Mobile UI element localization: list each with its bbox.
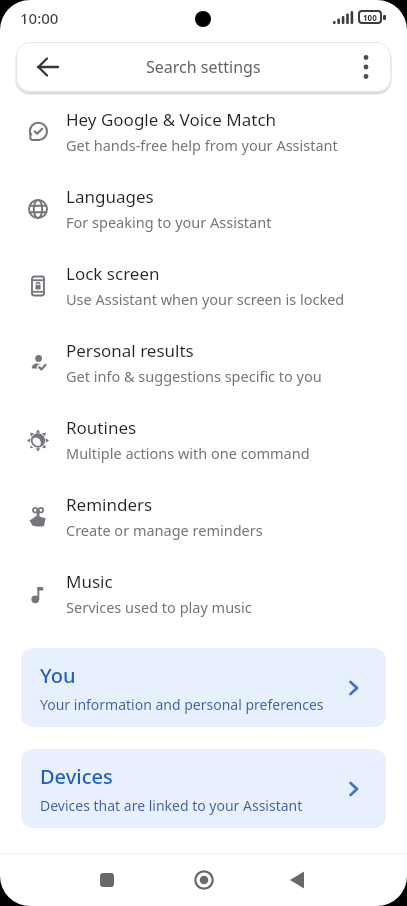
- button[interactable]: Search settings: [16, 42, 391, 92]
- button[interactable]: Devices: [21, 749, 386, 828]
- staticText: Reminders: [66, 493, 153, 516]
- button[interactable]: Routines: [0, 401, 407, 478]
- button[interactable]: Lock screen: [0, 247, 407, 324]
- button[interactable]: Personal results: [0, 324, 407, 401]
- staticText: Get info & suggestions specific to you: [66, 366, 322, 386]
- staticText: Music: [66, 570, 113, 593]
- staticText: Create or manage reminders: [66, 520, 263, 540]
- staticText: Devices: [40, 763, 113, 790]
- staticText: Multiple actions with one command: [66, 443, 310, 463]
- staticText: Use Assistant when your screen is locked: [66, 289, 345, 309]
- button[interactable]: Hey Google & Voice Match: [0, 93, 407, 170]
- staticText: 100: [363, 12, 377, 23]
- staticText: Get hands-free help from your Assistant: [66, 135, 338, 155]
- staticText: Lock screen: [66, 262, 160, 285]
- staticText: Devices that are linked to your Assistan…: [40, 796, 303, 815]
- button[interactable]: [194, 870, 214, 890]
- button[interactable]: [289, 871, 305, 889]
- staticText: Hey Google & Voice Match: [66, 108, 277, 131]
- button[interactable]: You: [21, 648, 386, 727]
- staticText: For speaking to your Assistant: [66, 212, 272, 232]
- staticText: Routines: [66, 416, 137, 439]
- button[interactable]: Music: [0, 555, 407, 632]
- staticText: Your information and personal preference…: [40, 695, 324, 714]
- staticText: Services used to play music: [66, 597, 252, 617]
- button[interactable]: [100, 873, 114, 887]
- button[interactable]: Reminders: [0, 478, 407, 555]
- staticText: Languages: [66, 185, 154, 208]
- staticText: Personal results: [66, 339, 194, 362]
- staticText: You: [40, 662, 76, 689]
- staticText: Search settings: [146, 56, 261, 78]
- staticText: 10:00: [20, 8, 59, 28]
- button[interactable]: Languages: [0, 170, 407, 247]
